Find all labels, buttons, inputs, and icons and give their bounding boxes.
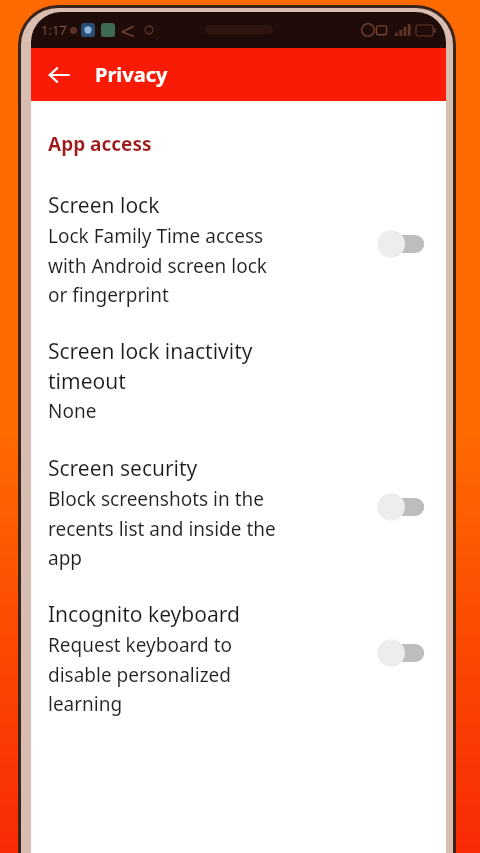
staticText: 1:17 [41, 21, 67, 39]
staticText: Request keyboard to disable personalized… [48, 632, 233, 716]
button[interactable]: Screen security [31, 454, 446, 570]
button[interactable]: Screen lock inactivity timeout [31, 337, 446, 424]
staticText: App access [48, 131, 152, 157]
staticText: Lock Family Time access with Android scr… [48, 223, 267, 307]
staticText: Screen lock [48, 191, 160, 220]
staticText: Incognito keyboard [48, 600, 240, 629]
staticText: Privacy [95, 61, 168, 88]
staticText: Block screenshots in the recents list an… [48, 486, 276, 570]
button[interactable]: Back [37, 53, 81, 97]
button[interactable]: Screen lock [31, 191, 446, 307]
staticText: None [48, 398, 97, 424]
button[interactable]: Incognito keyboard [31, 600, 446, 716]
button[interactable]: Toggle Incognito keyboard [380, 638, 436, 668]
button[interactable]: Toggle Screen lock [380, 229, 436, 259]
staticText: Screen security [48, 454, 198, 483]
staticText: Screen lock inactivity timeout [48, 337, 253, 395]
button[interactable]: Toggle Screen security [380, 492, 436, 522]
